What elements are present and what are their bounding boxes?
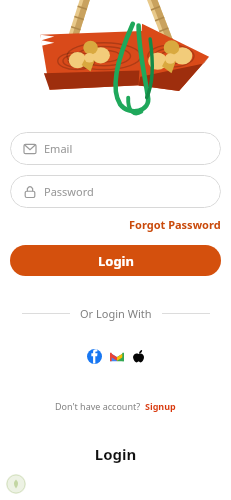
button[interactable]: Forgot Password (127, 216, 223, 233)
button[interactable]: Password (10, 175, 221, 208)
button[interactable]: Email (10, 132, 221, 165)
staticText: Or Login With (80, 306, 152, 321)
staticText: Forgot Password (129, 217, 221, 232)
button[interactable]: Sign in with Google (110, 350, 124, 364)
staticText: Login (98, 252, 134, 270)
staticText: Signup (145, 400, 176, 412)
button[interactable]: Sign in with Apple (132, 350, 145, 363)
staticText: Email (44, 141, 73, 156)
button[interactable]: Signup (145, 400, 176, 412)
button[interactable]: Sign in with Facebook (87, 349, 102, 364)
staticText: Password (44, 184, 94, 199)
button[interactable]: Login (10, 245, 221, 276)
staticText: Login (0, 444, 231, 464)
staticText: Don't have account? (55, 400, 141, 412)
